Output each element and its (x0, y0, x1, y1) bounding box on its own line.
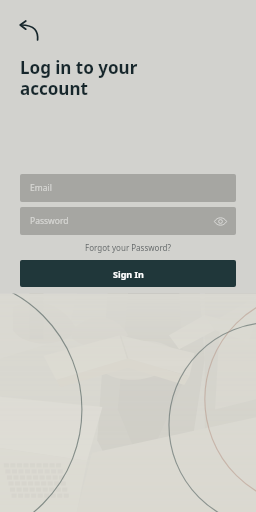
button[interactable]: Back (12, 14, 46, 48)
button[interactable]: Forgot your Password? (0, 242, 256, 253)
button[interactable]: Password (20, 207, 236, 235)
staticText: Password (30, 215, 69, 227)
button[interactable]: Email (20, 174, 236, 202)
staticText: Log in to your account (20, 56, 138, 100)
staticText: Forgot your Password? (85, 242, 171, 253)
button[interactable]: Sign In (20, 260, 236, 287)
button[interactable]: Show password (210, 211, 230, 231)
staticText: Email (30, 182, 52, 194)
staticText: Sign In (113, 268, 144, 280)
